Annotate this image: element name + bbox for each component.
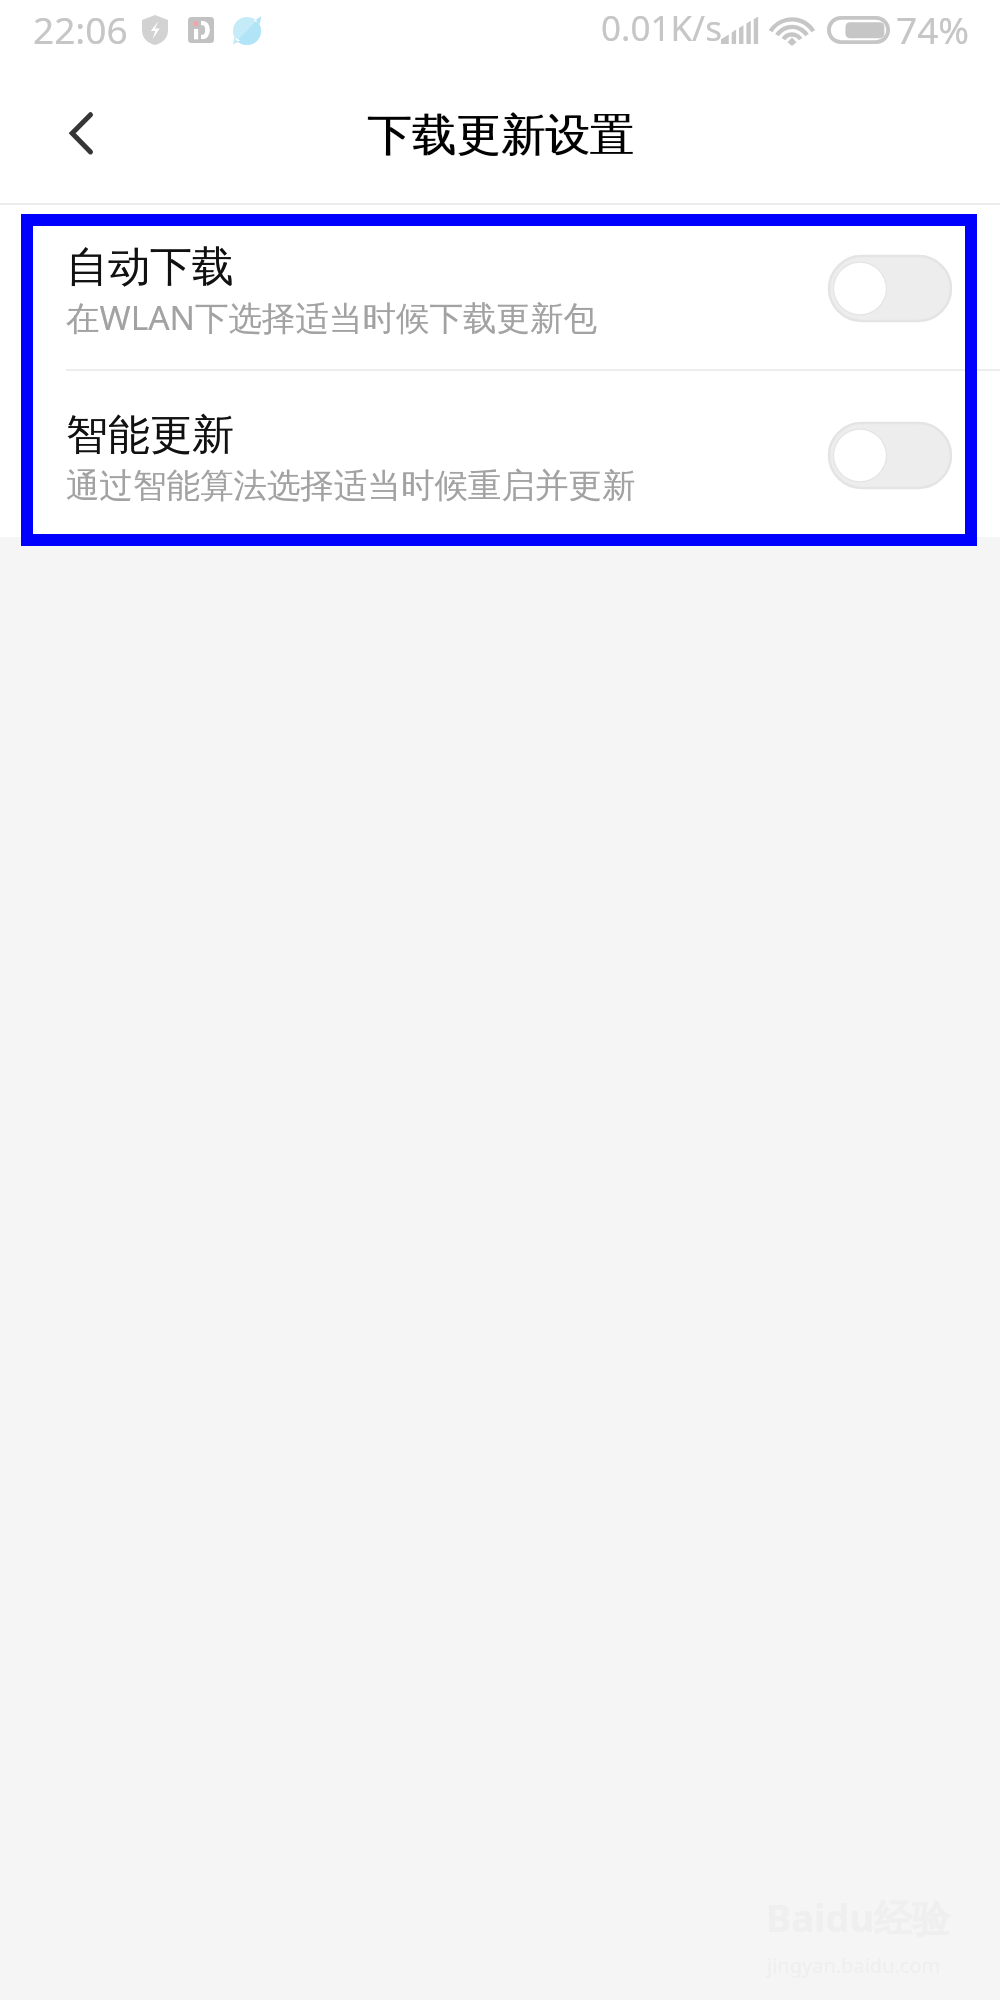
staticText: 22:06 [33, 4, 128, 54]
staticText: 通过智能算法选择适当时候重启并更新 [66, 465, 636, 507]
staticText: 智能更新 [66, 409, 234, 462]
staticText: 智能更新 [66, 409, 234, 462]
button[interactable]: 自动下载 [0, 203, 1000, 370]
staticText: 在WLAN下选择适当时候下载更新包 [66, 294, 598, 340]
button[interactable]: 智能更新 [829, 423, 951, 488]
staticText: 0.01K/s [601, 4, 722, 52]
staticText: 74% [896, 4, 970, 54]
staticText: 下载更新设置 [368, 107, 635, 163]
staticText: 自动下载 [66, 241, 234, 294]
staticText: 下载更新设置 [367, 107, 634, 163]
button[interactable]: 智能更新 [0, 370, 1000, 537]
staticText: 自动下载 [66, 241, 234, 294]
button[interactable]: 自动下载 [829, 256, 951, 321]
button[interactable]: Back [50, 92, 112, 174]
